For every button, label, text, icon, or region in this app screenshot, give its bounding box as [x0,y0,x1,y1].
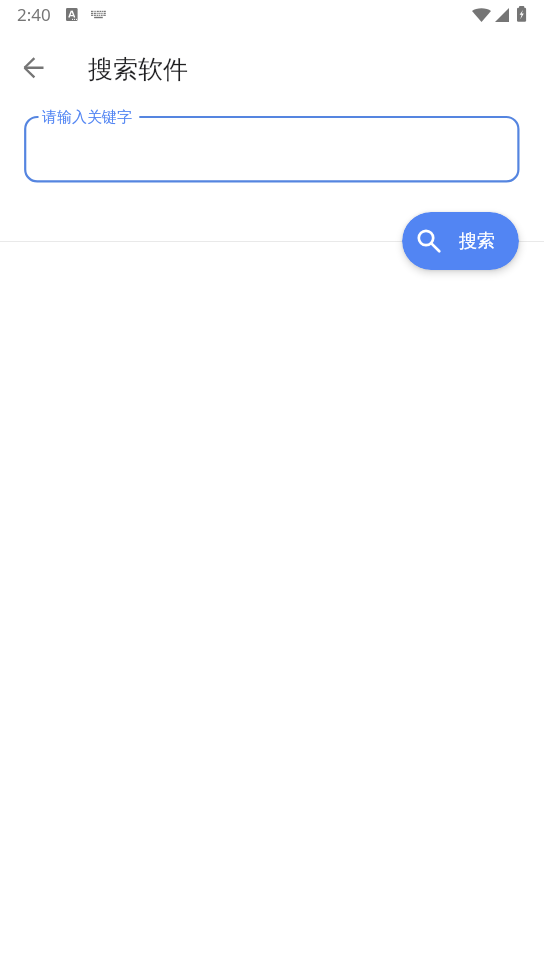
staticText: 2:40 [17,3,51,26]
staticText: 搜索软件 [88,54,188,85]
staticText: 请输入关键字 [42,108,132,127]
staticText: 搜索 [459,230,495,253]
button[interactable]: 搜索 [402,212,519,270]
button[interactable]: 请输入关键字 [18,103,526,193]
button[interactable]: Navigate up [14,49,54,89]
